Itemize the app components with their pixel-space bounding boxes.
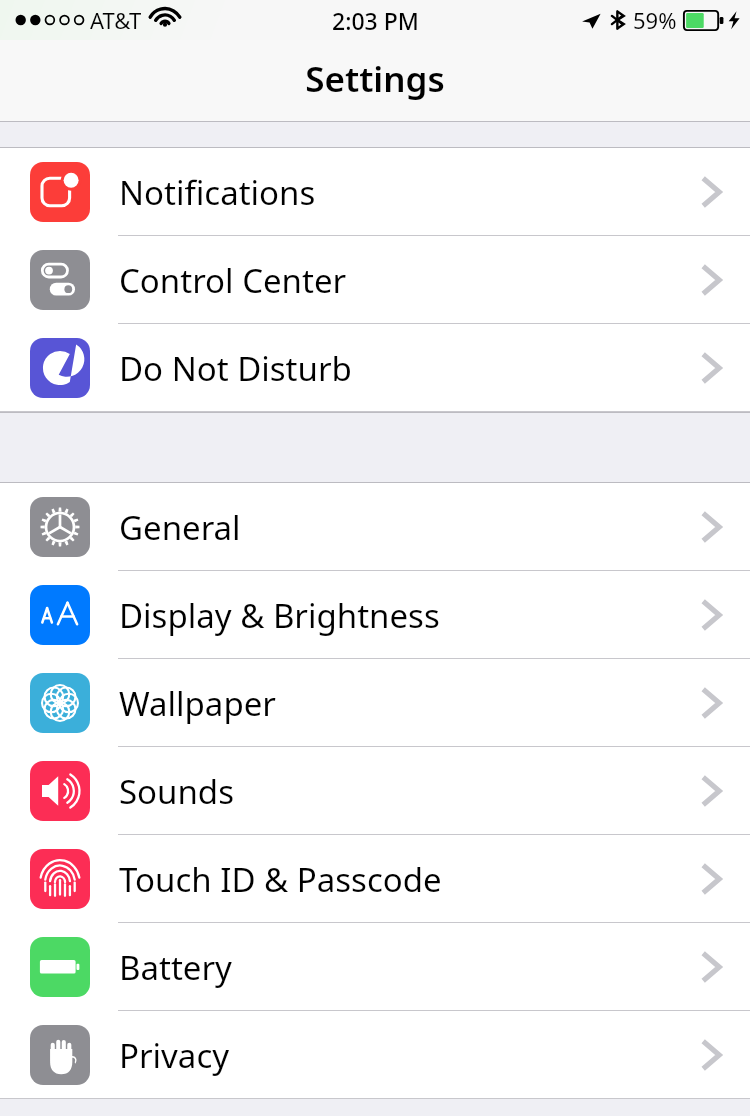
button[interactable]: Do Not Disturb <box>0 324 750 412</box>
staticText: Battery <box>119 945 232 990</box>
staticText: General <box>119 505 241 550</box>
button[interactable]: Touch ID & Passcode <box>0 835 750 923</box>
button[interactable]: Battery <box>0 923 750 1011</box>
staticText: Display & Brightness <box>119 593 440 638</box>
staticText: Notifications <box>119 170 316 215</box>
staticText: Wallpaper <box>119 681 276 726</box>
staticText: Touch ID & Passcode <box>119 857 442 902</box>
staticText: Control Center <box>119 258 347 303</box>
staticText: Sounds <box>119 769 234 814</box>
staticText: Do Not Disturb <box>119 346 352 391</box>
button[interactable]: General <box>0 483 750 571</box>
button[interactable]: Control Center <box>0 236 750 324</box>
staticText: Privacy <box>119 1033 230 1078</box>
staticText: 2:03 PM <box>332 5 419 36</box>
button[interactable]: Notifications <box>0 148 750 236</box>
button[interactable]: Display & Brightness <box>0 571 750 659</box>
staticText: 59% <box>633 5 677 35</box>
button[interactable]: Sounds <box>0 747 750 835</box>
button[interactable]: Wallpaper <box>0 659 750 747</box>
staticText: Settings <box>305 55 445 103</box>
button[interactable]: Privacy <box>0 1011 750 1099</box>
staticText: AT&T <box>90 5 142 35</box>
